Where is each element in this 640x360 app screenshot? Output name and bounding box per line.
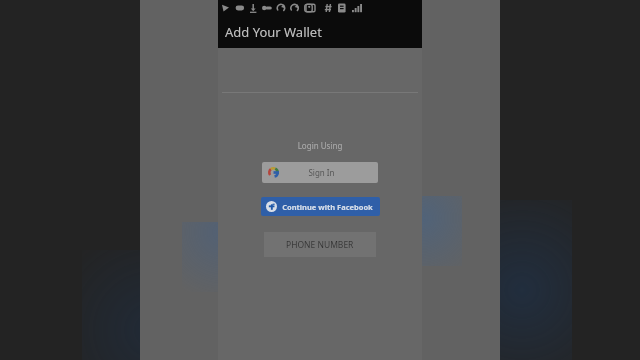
staticText: Sign In [279,167,364,178]
button[interactable]: Sign In [262,162,378,183]
staticText: PHONE NUMBER [286,239,354,251]
button[interactable]: Continue with Facebook [261,197,380,216]
staticText: Add Your Wallet [225,23,322,41]
staticText: Login Using [218,140,422,151]
button[interactable]: PHONE NUMBER [264,232,376,257]
staticText: Continue with Facebook [280,202,375,212]
